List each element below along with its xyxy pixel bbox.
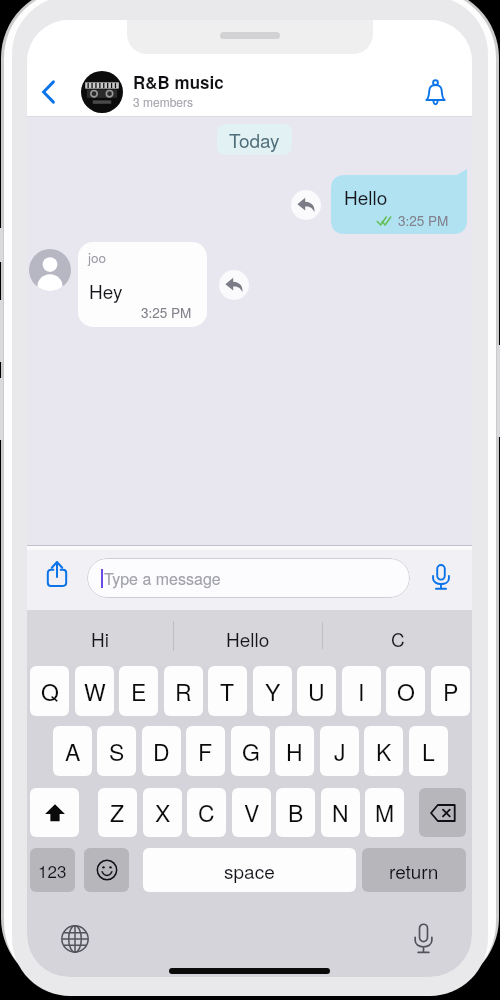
staticText: S [109, 735, 125, 768]
staticText: 3 members [133, 93, 194, 110]
button[interactable]: I [342, 666, 381, 716]
button[interactable]: Hello [174, 610, 322, 666]
button[interactable]: D [142, 726, 181, 776]
staticText: Q [41, 675, 59, 708]
button[interactable]: Y [253, 666, 292, 716]
button[interactable]: K [364, 726, 403, 776]
button[interactable]: B [276, 788, 315, 837]
button[interactable]: C [323, 610, 472, 666]
button[interactable]: Emoji [84, 848, 129, 892]
button[interactable]: P [431, 666, 470, 716]
staticText: P [443, 675, 459, 708]
button[interactable]: L [409, 726, 448, 776]
staticText: G [242, 735, 260, 768]
button[interactable]: Backspace [419, 788, 466, 837]
staticText: X [155, 796, 171, 829]
button[interactable]: Type a message [87, 558, 410, 598]
button[interactable]: Today [217, 124, 292, 155]
button[interactable]: Attach [39, 556, 75, 592]
staticText: joo [88, 248, 107, 267]
button[interactable]: Back [33, 68, 63, 116]
button[interactable]: Notifications [412, 68, 458, 116]
staticText: 123 [38, 858, 67, 882]
staticText: C [198, 796, 215, 829]
button[interactable]: Dictation [406, 921, 440, 955]
staticText: Today [229, 126, 280, 153]
button[interactable]: H [275, 726, 314, 776]
button[interactable]: Reply [219, 270, 249, 300]
staticText: Hello [226, 625, 270, 652]
button[interactable]: Return [362, 848, 466, 892]
button[interactable]: C [187, 788, 226, 837]
button[interactable]: Hi [27, 610, 173, 666]
button[interactable]: Change keyboard [58, 922, 92, 956]
staticText: space [224, 857, 275, 884]
staticText: C [391, 625, 405, 652]
staticText: Y [265, 675, 281, 708]
staticText: F [198, 735, 213, 768]
staticText: J [334, 735, 346, 768]
button[interactable]: J [320, 726, 359, 776]
staticText: A [65, 735, 81, 768]
staticText: 3:25 PM [398, 211, 449, 230]
button[interactable]: V [232, 788, 271, 837]
staticText: H [286, 735, 303, 768]
button[interactable]: F [186, 726, 225, 776]
button[interactable]: U [297, 666, 336, 716]
button[interactable]: M [365, 788, 404, 837]
button[interactable]: S [97, 726, 136, 776]
staticText: K [376, 735, 392, 768]
staticText: R [175, 675, 192, 708]
button[interactable]: G [231, 726, 270, 776]
button[interactable]: Voice message [424, 560, 458, 594]
button[interactable]: Hello [331, 175, 467, 234]
staticText: D [153, 735, 170, 768]
staticText: Type a message [104, 567, 221, 590]
staticText: B [288, 796, 304, 829]
button[interactable]: R [164, 666, 203, 716]
staticText: return [389, 857, 439, 884]
button[interactable]: Numbers [30, 848, 75, 892]
button[interactable]: X [143, 788, 182, 837]
button[interactable]: W [75, 666, 114, 716]
staticText: Z [110, 796, 125, 829]
staticText: R&B music [133, 70, 224, 94]
staticText: L [422, 735, 435, 768]
button[interactable]: T [208, 666, 247, 716]
button[interactable]: N [321, 788, 360, 837]
button[interactable]: Shift [30, 788, 79, 837]
staticText: E [131, 675, 147, 708]
button[interactable]: O [386, 666, 425, 716]
staticText: 3:25 PM [141, 303, 192, 322]
button[interactable]: E [119, 666, 158, 716]
button[interactable]: Q [30, 666, 69, 716]
button[interactable]: A [53, 726, 92, 776]
button[interactable]: Reply [291, 190, 321, 220]
staticText: V [244, 796, 260, 829]
staticText: T [220, 675, 235, 708]
staticText: N [332, 796, 349, 829]
staticText: O [397, 675, 415, 708]
staticText: Hello [344, 183, 388, 210]
staticText: W [84, 675, 106, 708]
staticText: I [358, 675, 365, 708]
staticText: Hey [89, 277, 123, 304]
button[interactable]: Space [143, 848, 356, 892]
button[interactable]: Z [98, 788, 137, 837]
button[interactable]: joo [78, 242, 207, 327]
staticText: U [308, 675, 325, 708]
staticText: M [375, 796, 395, 829]
staticText: Hi [91, 625, 109, 652]
